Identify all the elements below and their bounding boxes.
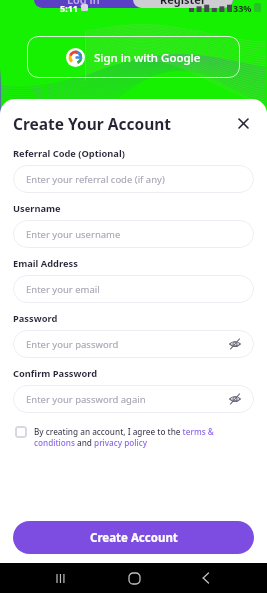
staticText: Enter your password	[26, 338, 119, 351]
button[interactable]: Enter your username	[13, 220, 254, 248]
button[interactable]: Register	[133, 0, 233, 8]
staticText: Sign in with Google	[94, 50, 201, 66]
staticText: Email Address	[13, 257, 78, 270]
staticText: By creating an account, I agree to the t…	[34, 426, 254, 448]
staticText: Enter your password again	[26, 393, 146, 406]
staticText: Log in	[67, 0, 100, 7]
staticText: Enter your username	[26, 228, 121, 241]
button[interactable]: Log in	[34, 0, 133, 8]
staticText: Create Account	[90, 530, 178, 546]
staticText: Enter your referral code (if any)	[26, 173, 165, 186]
staticText: Password	[13, 312, 58, 325]
staticText: 33%	[233, 2, 252, 14]
button[interactable]: Recent apps	[48, 565, 74, 591]
staticText: Username	[13, 202, 61, 215]
button[interactable]: Toggle password visibility	[227, 336, 243, 352]
button[interactable]: Close	[232, 112, 254, 134]
button[interactable]: Sign in with Google	[27, 36, 240, 78]
button[interactable]: Enter your password	[13, 330, 254, 358]
button[interactable]: Back	[193, 565, 219, 591]
staticText: Register	[160, 0, 206, 7]
button[interactable]: Enter your password again	[13, 385, 254, 413]
staticText: 5:11	[60, 2, 78, 14]
button[interactable]: By creating an account, I agree to the t…	[13, 426, 254, 448]
staticText: Enter your email	[26, 283, 100, 296]
button[interactable]: Create Account	[13, 521, 254, 554]
button[interactable]: Home	[121, 565, 147, 591]
staticText: Create Your Account	[13, 113, 172, 134]
button[interactable]: Enter your email	[13, 275, 254, 303]
staticText: Confirm Password	[13, 367, 98, 380]
button[interactable]: Enter your referral code (if any)	[13, 165, 254, 193]
staticText: Referral Code (Optional)	[13, 147, 125, 160]
button[interactable]: Toggle password visibility	[227, 391, 243, 407]
